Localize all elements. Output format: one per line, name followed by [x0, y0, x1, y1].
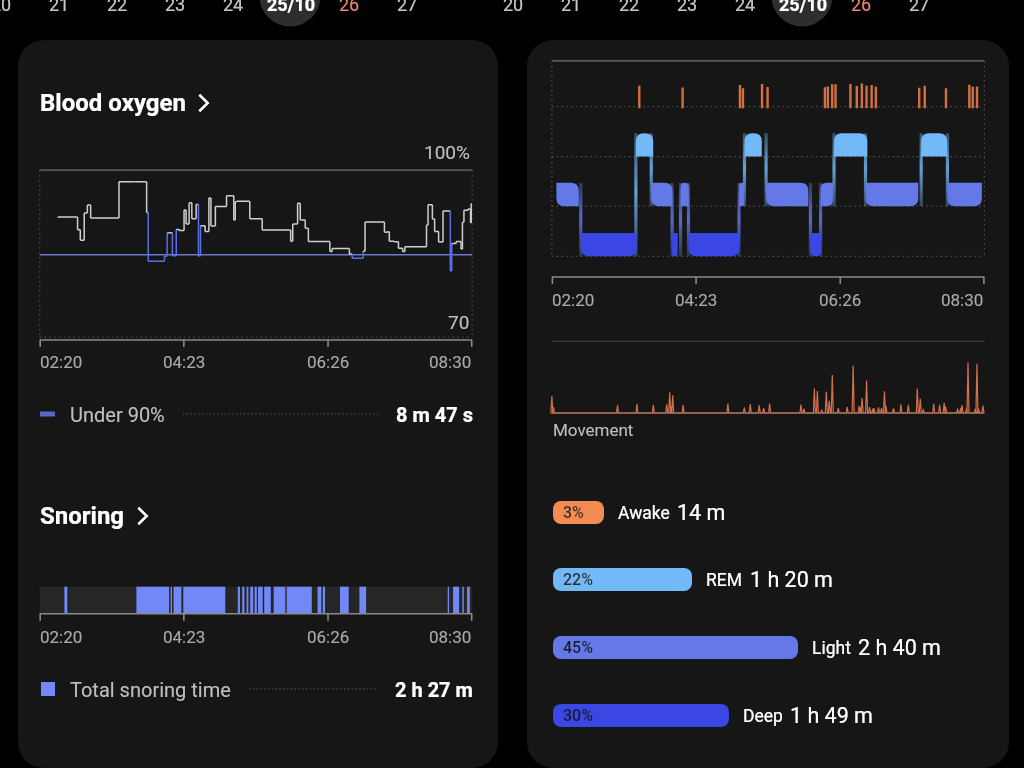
staticText: 04:23	[163, 352, 206, 372]
button[interactable]: 27	[378, 0, 436, 19]
button[interactable]: 26	[832, 0, 890, 19]
staticText: Awake	[618, 503, 670, 524]
staticText: 45%	[563, 638, 593, 657]
staticText: 24	[735, 0, 756, 15]
button[interactable]: 21	[542, 0, 600, 19]
button[interactable]: 27	[890, 0, 948, 19]
staticText: 26	[851, 0, 872, 15]
staticText: 100%	[424, 141, 470, 163]
staticText: 22	[619, 0, 640, 15]
staticText: 02:20	[40, 627, 83, 647]
button[interactable]: 3%	[553, 500, 726, 524]
staticText: 30%	[563, 706, 593, 725]
staticText: 21	[561, 0, 582, 15]
staticText: 21	[49, 0, 70, 15]
staticText: REM	[706, 570, 743, 591]
staticText: 14 m	[677, 500, 726, 524]
staticText: Deep	[743, 706, 783, 727]
button[interactable]: Snoring	[40, 500, 148, 532]
staticText: Light	[812, 638, 851, 659]
staticText: 20	[0, 0, 12, 15]
button[interactable]: 21	[30, 0, 88, 19]
staticText: Total snoring time	[70, 678, 231, 701]
staticText: 70	[448, 311, 470, 333]
staticText: 27	[397, 0, 418, 15]
button[interactable]: 25/10	[262, 0, 320, 19]
staticText: 04:23	[675, 290, 718, 310]
button[interactable]: 22%	[553, 567, 833, 591]
staticText: 06:26	[307, 352, 350, 372]
staticText: Blood oxygen	[40, 89, 186, 117]
staticText: Under 90%	[70, 403, 165, 426]
staticText: 08:30	[429, 627, 472, 647]
staticText: 1 h 20 m	[750, 567, 833, 591]
button[interactable]: 22	[88, 0, 146, 19]
staticText: 04:23	[163, 627, 206, 647]
button[interactable]: 24	[204, 0, 262, 19]
other: Open Blood oxygen	[198, 94, 209, 112]
staticText: 23	[677, 0, 698, 15]
staticText: 02:20	[40, 352, 83, 372]
staticText: Movement	[553, 420, 634, 440]
staticText: 27	[909, 0, 930, 15]
button[interactable]: 22	[600, 0, 658, 19]
staticText: 2 h 40 m	[858, 635, 941, 659]
staticText: 1 h 49 m	[790, 703, 873, 727]
staticText: 3%	[563, 503, 584, 522]
staticText: 8 m 47 s	[396, 403, 473, 426]
button[interactable]: 30%	[553, 703, 873, 727]
staticText: 08:30	[429, 352, 472, 372]
button[interactable]: 26	[320, 0, 378, 19]
staticText: 06:26	[307, 627, 350, 647]
staticText: 26	[339, 0, 360, 15]
button[interactable]: 45%	[553, 635, 941, 659]
button[interactable]: 25/10	[774, 0, 832, 19]
staticText: 24	[223, 0, 244, 15]
button[interactable]: 20	[0, 0, 30, 19]
staticText: 25/10	[267, 0, 316, 15]
staticText: 2 h 27 m	[395, 678, 473, 701]
button[interactable]: Blood oxygen	[40, 87, 209, 119]
button[interactable]: 23	[658, 0, 716, 19]
staticText: 25/10	[779, 0, 828, 15]
other: Open Snoring	[137, 507, 148, 525]
staticText: 02:20	[552, 290, 595, 310]
staticText: 06:26	[819, 290, 862, 310]
staticText: Snoring	[40, 502, 125, 530]
staticText: 23	[165, 0, 186, 15]
staticText: 22	[107, 0, 128, 15]
staticText: 20	[503, 0, 524, 15]
button[interactable]: 20	[484, 0, 542, 19]
staticText: 22%	[563, 570, 593, 589]
button[interactable]: 23	[146, 0, 204, 19]
staticText: 08:30	[941, 290, 984, 310]
button[interactable]: 24	[716, 0, 774, 19]
